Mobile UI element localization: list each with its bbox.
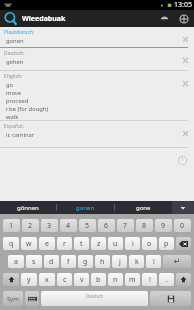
staticText: move bbox=[6, 89, 22, 97]
button[interactable]: 7 bbox=[117, 219, 134, 232]
button[interactable]: i bbox=[125, 237, 140, 250]
staticText: gönnen bbox=[17, 204, 39, 212]
staticText: 0 bbox=[180, 221, 185, 231]
button[interactable]: w bbox=[21, 237, 37, 250]
button[interactable]: d bbox=[44, 255, 59, 268]
staticText: 6 bbox=[104, 221, 109, 231]
staticText: 2 bbox=[28, 221, 33, 231]
button[interactable]: Shift bbox=[3, 273, 19, 286]
button[interactable]: Clear bbox=[181, 35, 190, 44]
button[interactable]: Enter bbox=[163, 255, 191, 268]
button[interactable]: r bbox=[57, 237, 72, 250]
button[interactable]: j bbox=[112, 255, 127, 268]
staticText: gone bbox=[136, 204, 151, 212]
button[interactable]: Space bbox=[41, 291, 148, 306]
button[interactable]: 4 bbox=[60, 219, 77, 232]
button[interactable]: y bbox=[21, 273, 37, 286]
button[interactable]: n bbox=[108, 273, 123, 286]
button[interactable]: More suggestions bbox=[172, 201, 194, 214]
staticText: f bbox=[67, 257, 70, 267]
staticText: Sym bbox=[7, 295, 19, 303]
button[interactable]: l bbox=[146, 255, 161, 268]
button[interactable]: 0 bbox=[174, 219, 191, 232]
staticText: Español: bbox=[4, 123, 24, 130]
button[interactable]: Search bbox=[0, 10, 22, 27]
button[interactable]: 2 bbox=[22, 219, 39, 232]
button[interactable]: x bbox=[39, 273, 55, 286]
button[interactable]: m bbox=[125, 273, 140, 286]
staticText: d bbox=[49, 257, 54, 267]
button[interactable]: t bbox=[74, 237, 89, 250]
button[interactable]: q bbox=[3, 237, 19, 250]
button[interactable]: c bbox=[57, 273, 72, 286]
button[interactable]: a bbox=[8, 255, 24, 268]
button[interactable]: 9 bbox=[155, 219, 172, 232]
staticText: 5 bbox=[85, 221, 90, 231]
staticText: a bbox=[14, 257, 18, 267]
staticText: j bbox=[119, 257, 121, 267]
staticText: 8 bbox=[142, 221, 147, 231]
staticText: v bbox=[80, 275, 84, 285]
staticText: walk bbox=[6, 113, 19, 121]
staticText: i bbox=[132, 239, 134, 249]
button[interactable]: Sym bbox=[3, 291, 23, 306]
button[interactable]: u bbox=[108, 237, 123, 250]
staticText: s bbox=[32, 257, 36, 267]
button[interactable]: Add entry bbox=[174, 10, 194, 27]
staticText: m bbox=[129, 275, 136, 285]
staticText: 13:05 bbox=[174, 0, 192, 10]
button[interactable]: ! bbox=[142, 273, 157, 286]
staticText: rise (for dough) bbox=[6, 105, 49, 113]
button[interactable]: f bbox=[61, 255, 76, 268]
button[interactable]: History bbox=[177, 155, 188, 166]
staticText: k bbox=[135, 257, 139, 267]
staticText: ir, caminar bbox=[6, 131, 35, 139]
button[interactable]: 8 bbox=[136, 219, 153, 232]
button[interactable]: k bbox=[129, 255, 144, 268]
button[interactable]: Clear bbox=[181, 79, 190, 88]
button[interactable]: Switch keyboard bbox=[25, 291, 39, 306]
button[interactable]: Shift right bbox=[176, 273, 191, 286]
button[interactable]: v bbox=[74, 273, 89, 286]
button[interactable]: Backspace bbox=[176, 237, 191, 250]
button[interactable]: 3 bbox=[41, 219, 58, 232]
button[interactable]: z bbox=[91, 237, 106, 250]
staticText: 4 bbox=[66, 221, 71, 231]
button[interactable]: 1 bbox=[3, 219, 20, 232]
button[interactable]: . bbox=[159, 273, 174, 286]
staticText: w bbox=[26, 239, 32, 249]
button[interactable]: h bbox=[95, 255, 110, 268]
button[interactable]: gonen bbox=[57, 201, 114, 214]
button[interactable]: gönnen bbox=[0, 201, 56, 214]
staticText: go bbox=[6, 81, 14, 89]
button[interactable]: Clear bbox=[181, 129, 190, 138]
staticText: l bbox=[153, 257, 155, 267]
staticText: ! bbox=[149, 275, 151, 285]
button[interactable]: gone bbox=[115, 201, 172, 214]
button[interactable]: Clear bbox=[181, 56, 190, 65]
staticText: t bbox=[80, 239, 83, 249]
staticText: x bbox=[45, 275, 49, 285]
button[interactable]: Done bbox=[150, 291, 191, 306]
staticText: gonen bbox=[76, 204, 95, 212]
button[interactable]: s bbox=[26, 255, 42, 268]
staticText: n bbox=[113, 275, 118, 285]
button[interactable]: b bbox=[91, 273, 106, 286]
staticText: gonen bbox=[6, 37, 24, 45]
button[interactable]: o bbox=[142, 237, 157, 250]
staticText: o bbox=[147, 239, 152, 249]
staticText: e bbox=[45, 239, 49, 249]
staticText: Deutsch bbox=[86, 293, 104, 299]
button[interactable]: g bbox=[78, 255, 93, 268]
button[interactable]: p bbox=[159, 237, 174, 250]
button[interactable]: 6 bbox=[98, 219, 115, 232]
staticText: p bbox=[164, 239, 169, 249]
button[interactable]: 5 bbox=[79, 219, 96, 232]
button[interactable]: e bbox=[39, 237, 55, 250]
staticText: c bbox=[63, 275, 67, 285]
button[interactable]: Voice search bbox=[154, 10, 174, 27]
staticText: ↵ bbox=[174, 257, 181, 266]
staticText: z bbox=[97, 239, 101, 249]
staticText: y bbox=[27, 275, 31, 285]
staticText: 1 bbox=[9, 221, 14, 231]
